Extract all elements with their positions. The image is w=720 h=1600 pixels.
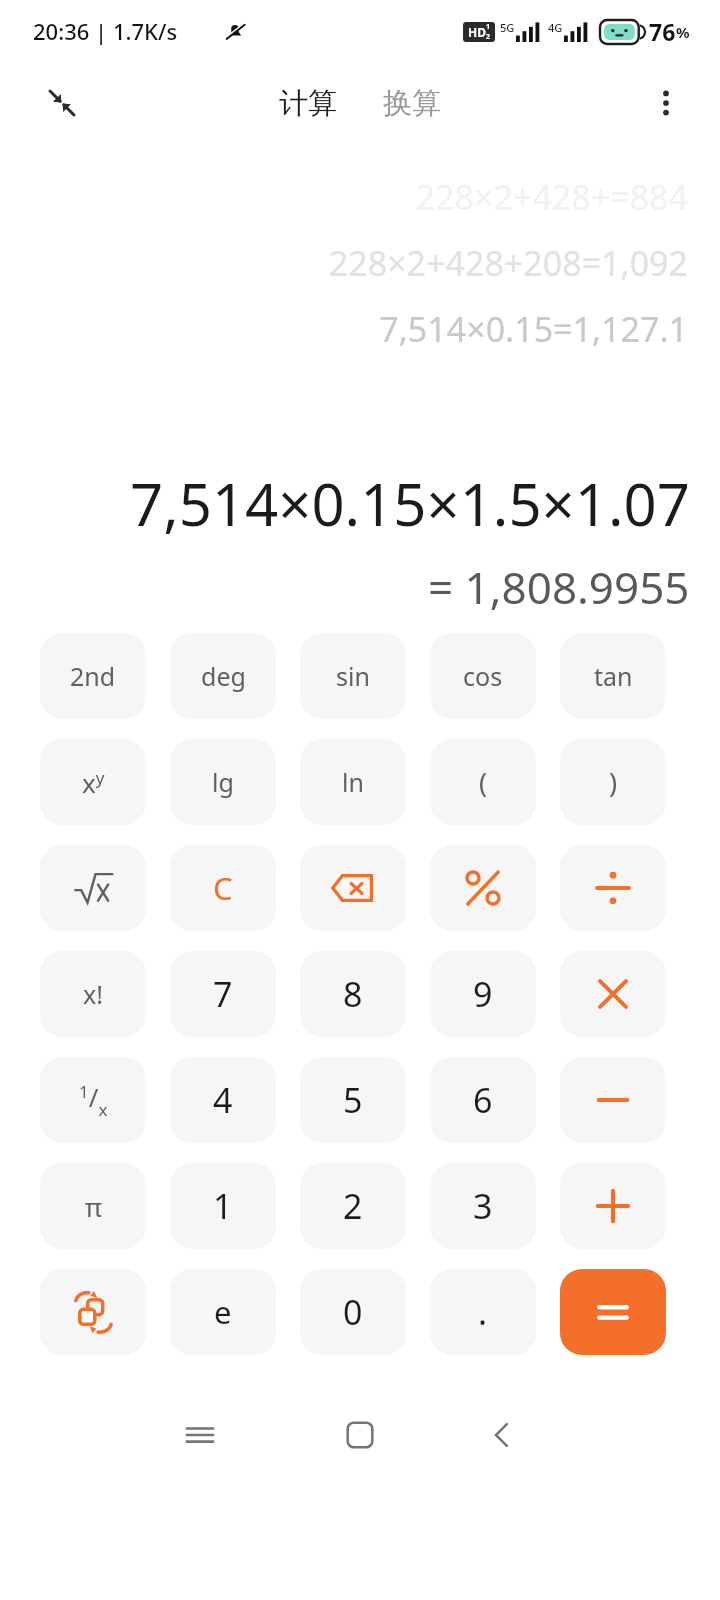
button[interactable]: Divide xyxy=(560,845,666,931)
button[interactable]: π xyxy=(40,1163,146,1249)
button[interactable]: 7 xyxy=(170,951,276,1037)
staticText: 1 xyxy=(213,1183,233,1229)
staticText: deg xyxy=(201,659,246,693)
staticText: 4G xyxy=(548,20,563,35)
staticText: x! xyxy=(83,977,103,1011)
staticText: 7 xyxy=(213,971,233,1017)
staticText: 7,514×0.15×1.5×1.07 xyxy=(130,464,690,543)
button[interactable]: 6 xyxy=(430,1057,536,1143)
button[interactable]: Convert xyxy=(40,1269,146,1355)
button[interactable]: 2nd xyxy=(40,633,146,719)
staticText: 2 xyxy=(343,1183,363,1229)
button[interactable]: 5 xyxy=(300,1057,406,1143)
staticText: 228×2+428+208=1,092 xyxy=(328,240,688,286)
button[interactable]: Back xyxy=(470,1403,534,1467)
staticText: 228×2+428+=884 xyxy=(415,174,688,220)
staticText: C xyxy=(213,867,233,909)
button[interactable]: 8 xyxy=(300,951,406,1037)
button[interactable]: Backspace xyxy=(300,845,406,931)
staticText: 9 xyxy=(473,971,493,1017)
staticText: 0 xyxy=(343,1289,363,1335)
button[interactable]: Plus xyxy=(560,1163,666,1249)
button[interactable]: 计算 xyxy=(273,81,343,126)
button[interactable]: ) xyxy=(560,739,666,825)
button[interactable]: lg xyxy=(170,739,276,825)
button[interactable]: 0 xyxy=(300,1269,406,1355)
button[interactable]: Recent apps xyxy=(168,1403,232,1467)
staticText: . xyxy=(478,1289,488,1335)
button[interactable]: deg xyxy=(170,633,276,719)
staticText: 5 xyxy=(343,1077,363,1123)
staticText: e xyxy=(214,1291,232,1333)
button[interactable]: x! xyxy=(40,951,146,1037)
staticText: sin xyxy=(336,659,370,693)
button[interactable]: tan xyxy=(560,633,666,719)
staticText: 5G xyxy=(500,20,515,35)
button[interactable]: Percent xyxy=(430,845,536,931)
staticText: 4 xyxy=(213,1077,233,1123)
button[interactable]: ( xyxy=(430,739,536,825)
staticText: 2 xyxy=(486,32,491,42)
button[interactable]: Equals xyxy=(560,1269,666,1355)
staticText: π xyxy=(85,1189,102,1224)
button[interactable]: One over x xyxy=(40,1057,146,1143)
staticText: 1 xyxy=(486,22,491,32)
button[interactable]: 4 xyxy=(170,1057,276,1143)
staticText: ) xyxy=(609,764,618,801)
button[interactable]: 换算 xyxy=(377,81,447,126)
button[interactable]: cos xyxy=(430,633,536,719)
staticText: = 1,808.9955 xyxy=(428,557,690,617)
staticText: 7,514×0.15=1,127.1 xyxy=(379,306,688,352)
staticText: 3 xyxy=(473,1183,493,1229)
staticText: HD xyxy=(468,24,486,40)
staticText: 计算 xyxy=(279,85,337,122)
staticText: tan xyxy=(594,659,633,693)
button[interactable]: C xyxy=(170,845,276,931)
staticText: ln xyxy=(342,765,364,799)
button[interactable]: 2 xyxy=(300,1163,406,1249)
staticText: 20:36 | 1.7K/s xyxy=(33,16,178,46)
staticText: 换算 xyxy=(383,85,441,122)
button[interactable]: Collapse xyxy=(40,81,84,125)
button[interactable]: Square root xyxy=(40,845,146,931)
staticText: 6 xyxy=(473,1077,493,1123)
staticText: xy xyxy=(82,765,105,800)
staticText: 8 xyxy=(343,971,363,1017)
button[interactable]: Multiply xyxy=(560,951,666,1037)
button[interactable]: Minus xyxy=(560,1057,666,1143)
staticText: lg xyxy=(212,765,234,799)
button[interactable]: 3 xyxy=(430,1163,536,1249)
button[interactable]: 9 xyxy=(430,951,536,1037)
staticText: cos xyxy=(463,659,503,693)
button[interactable]: ln xyxy=(300,739,406,825)
staticText: % xyxy=(676,22,690,42)
button[interactable]: More options xyxy=(644,81,688,125)
staticText: 1/x xyxy=(79,1079,108,1121)
button[interactable]: sin xyxy=(300,633,406,719)
staticText: ( xyxy=(479,764,488,801)
button[interactable]: 1 xyxy=(170,1163,276,1249)
button[interactable]: Home xyxy=(328,1403,392,1467)
button[interactable]: . xyxy=(430,1269,536,1355)
button[interactable]: e xyxy=(170,1269,276,1355)
button[interactable]: x to the power of y xyxy=(40,739,146,825)
staticText: 2nd xyxy=(70,659,116,693)
staticText: 76 xyxy=(649,16,676,47)
